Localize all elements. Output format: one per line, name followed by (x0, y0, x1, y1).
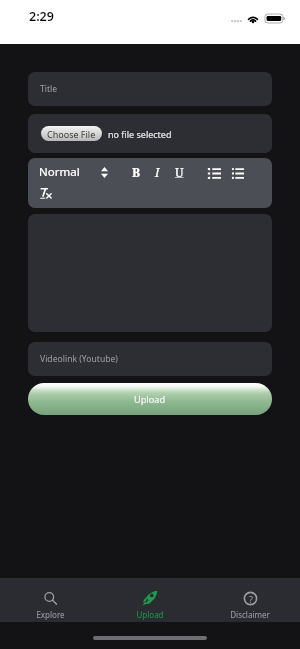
staticText: B (132, 164, 141, 180)
staticText: no file selected (108, 128, 172, 140)
staticText: Explore (36, 609, 65, 620)
staticText: Videolink (Youtube) (40, 353, 118, 365)
button[interactable]: I (149, 163, 166, 180)
button[interactable]: Explore (0, 578, 100, 620)
button[interactable]: ? (200, 578, 300, 620)
button[interactable]: Videolink (Youtube) (28, 342, 272, 376)
button[interactable]: Bullet list (229, 165, 246, 182)
staticText: U (175, 164, 184, 180)
button[interactable]: Upload (100, 578, 200, 620)
button[interactable]: Upload (28, 383, 272, 415)
staticText: Title (40, 83, 58, 95)
staticText: Upload (134, 393, 166, 406)
button[interactable]: Numbered list (206, 165, 223, 182)
button[interactable]: Change text style (99, 164, 109, 180)
staticText: Upload (136, 609, 164, 620)
staticText: 2:29 (29, 8, 54, 25)
button[interactable]: Choose File (28, 114, 272, 153)
staticText: Disclaimer (230, 609, 270, 620)
staticText: ? (249, 593, 253, 605)
staticText: Normal (39, 164, 80, 180)
button[interactable]: Normal (39, 164, 80, 180)
button[interactable]: Clear formatting (38, 184, 58, 202)
button[interactable]: B (128, 163, 145, 180)
button[interactable]: Title (28, 72, 272, 106)
staticText: I (155, 164, 160, 180)
staticText: Choose File (47, 128, 96, 140)
button[interactable]: U (171, 163, 188, 180)
button[interactable]: Choose File (41, 126, 102, 141)
